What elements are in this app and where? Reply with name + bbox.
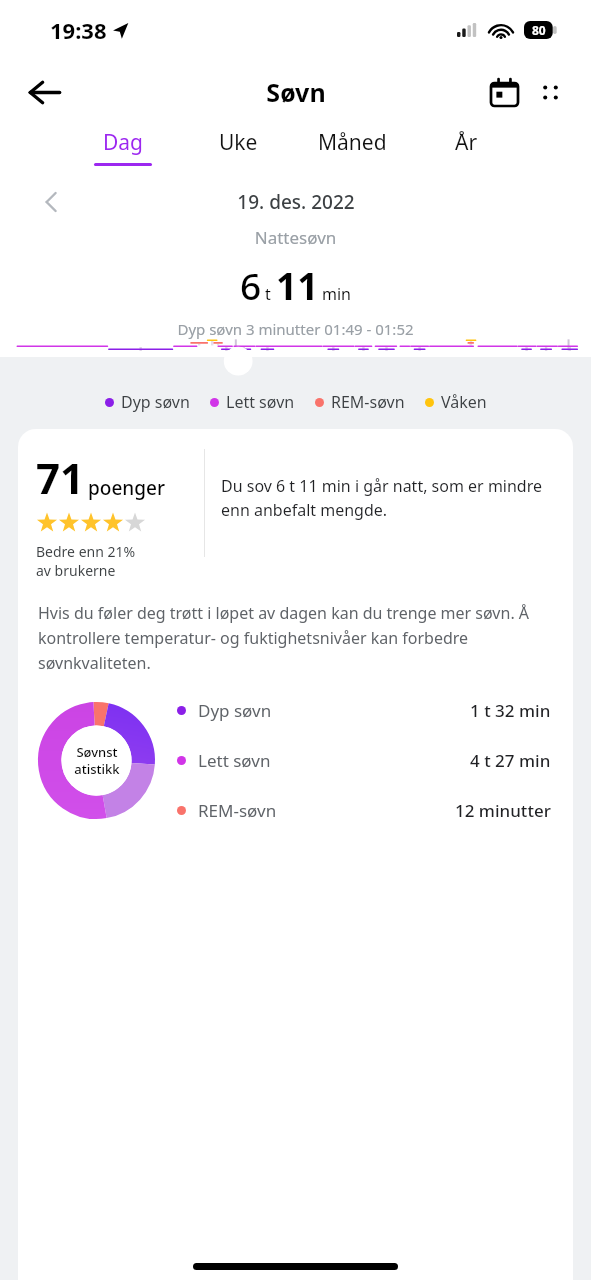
- button[interactable]: Dag: [68, 124, 178, 180]
- staticText: Dyp søvn 3 minutter 01:49 - 01:52: [0, 319, 591, 339]
- staticText: min: [322, 283, 351, 305]
- staticText: Dag: [103, 128, 144, 157]
- staticText: REM-søvn: [331, 391, 405, 413]
- staticText: 80: [532, 22, 546, 38]
- button[interactable]: Måned: [297, 124, 407, 180]
- staticText: Du sov 6 t 11 min i går natt, som er min…: [221, 475, 567, 521]
- button[interactable]: Dyp søvn: [105, 391, 190, 413]
- staticText: 1 t 32 min: [470, 699, 551, 722]
- button[interactable]: År: [411, 124, 521, 180]
- button[interactable]: REM-søvn: [177, 799, 551, 822]
- button[interactable]: Våken: [425, 391, 487, 413]
- button[interactable]: Calendar: [481, 69, 527, 115]
- button[interactable]: More options: [527, 69, 573, 115]
- button[interactable]: Dyp søvn: [177, 699, 551, 722]
- staticText: Nattesøvn: [0, 226, 591, 249]
- staticText: Hvis du føler deg trøtt i løpet av dagen…: [38, 602, 553, 673]
- button[interactable]: Uke: [183, 124, 293, 180]
- staticText: Våken: [441, 391, 487, 413]
- staticText: poenger: [88, 475, 165, 501]
- staticText: 12 minutter: [455, 799, 551, 822]
- staticText: Uke: [219, 128, 258, 157]
- staticText: 19:38: [50, 15, 107, 45]
- staticText: 11: [276, 260, 319, 310]
- staticText: Bedre enn 21% av brukerne: [36, 542, 136, 580]
- staticText: t: [265, 283, 271, 305]
- staticText: Lett søvn: [226, 391, 295, 413]
- button[interactable]: Lett søvn: [177, 749, 551, 772]
- staticText: Måned: [318, 128, 387, 157]
- staticText: Lett søvn: [198, 749, 271, 772]
- button[interactable]: Lett søvn: [210, 391, 295, 413]
- staticText: Dyp søvn: [198, 699, 272, 722]
- button[interactable]: Sleep statistics: [38, 702, 155, 819]
- staticText: REM-søvn: [198, 799, 277, 822]
- staticText: 19. des. 2022: [237, 189, 355, 215]
- button[interactable]: Back: [18, 66, 70, 118]
- staticText: Dyp søvn: [121, 391, 190, 413]
- staticText: 4 t 27 min: [470, 749, 551, 772]
- staticText: 6: [240, 260, 262, 310]
- staticText: 71: [36, 449, 85, 506]
- staticText: År: [455, 128, 478, 157]
- button[interactable]: REM-søvn: [315, 391, 405, 413]
- staticText: Søvn: [266, 75, 326, 109]
- staticText: Søvnst atistikk: [74, 743, 120, 778]
- button[interactable]: Previous day: [30, 180, 74, 224]
